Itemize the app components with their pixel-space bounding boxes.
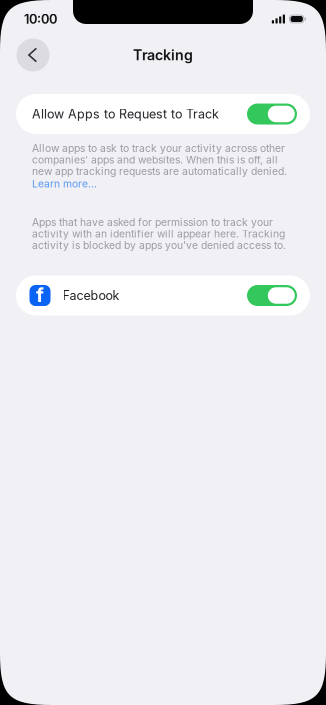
button[interactable]: Back	[16, 38, 49, 71]
staticText: Learn more...	[32, 177, 97, 190]
staticText: Allow Apps to Request to Track	[32, 106, 219, 122]
staticText: 10:00	[24, 11, 57, 27]
staticText: f	[36, 283, 44, 307]
staticText: Apps that have asked for permission to t…	[32, 216, 286, 251]
button[interactable]: f	[16, 275, 310, 315]
staticText: Facebook	[62, 288, 119, 303]
button[interactable]: Allow Apps to Request to Track	[16, 94, 310, 134]
staticText: Tracking	[133, 46, 193, 63]
button[interactable]: Learn more...	[32, 177, 97, 190]
staticText: Allow apps to ask to track your activity…	[32, 142, 287, 177]
